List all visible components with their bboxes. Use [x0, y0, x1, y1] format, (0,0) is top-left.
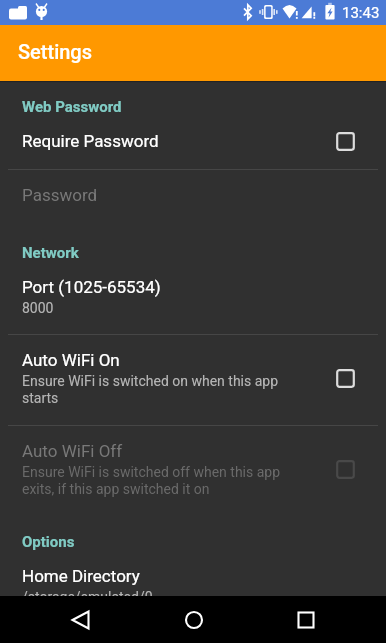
button[interactable]: Back: [57, 596, 104, 643]
button[interactable]: Auto WiFi Off: [0, 426, 386, 516]
other: Toggle Require Password: [336, 132, 355, 151]
staticText: /storage/emulated/0: [22, 589, 153, 596]
staticText: Auto WiFi On: [22, 350, 120, 370]
staticText: Require Password: [22, 131, 159, 151]
button[interactable]: Home Directory: [0, 551, 386, 596]
staticText: Ensure WiFi is switched off when this ap…: [22, 464, 305, 498]
other: Toggle Auto WiFi On: [336, 369, 355, 388]
staticText: Ensure WiFi is switched on when this app…: [22, 373, 305, 407]
staticText: Network: [22, 244, 79, 262]
button[interactable]: Password: [0, 170, 386, 223]
staticText: Port (1025-65534): [22, 277, 161, 297]
button[interactable]: Auto WiFi On: [0, 335, 386, 425]
button[interactable]: Recent apps: [282, 596, 329, 643]
button[interactable]: Home: [170, 596, 217, 643]
staticText: Home Directory: [22, 566, 140, 586]
button[interactable]: Port (1025-65534): [0, 262, 386, 334]
staticText: Auto WiFi Off: [22, 441, 123, 461]
staticText: Settings: [18, 40, 93, 63]
other: Toggle Auto WiFi Off: [336, 460, 355, 479]
button[interactable]: Settings: [0, 25, 386, 81]
staticText: 13:43: [342, 4, 380, 22]
staticText: 8000: [22, 300, 54, 316]
button[interactable]: Require Password: [0, 116, 386, 169]
staticText: Options: [22, 533, 75, 551]
staticText: Password: [22, 185, 98, 205]
staticText: Web Password: [22, 98, 122, 116]
